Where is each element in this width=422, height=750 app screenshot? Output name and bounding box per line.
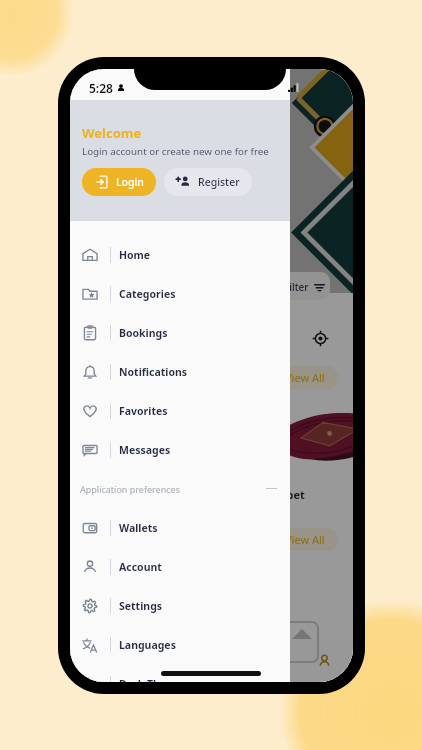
staticText: Dark Theme: [119, 677, 183, 682]
button[interactable]: Account: [70, 547, 290, 586]
staticText: Categories: [119, 287, 176, 301]
staticText: Languages: [119, 638, 176, 652]
staticText: Account: [119, 560, 162, 574]
staticText: Favorites: [119, 404, 168, 418]
button[interactable]: Wallets: [70, 508, 290, 547]
button[interactable]: Bookings: [70, 313, 290, 352]
staticText: Home: [119, 248, 151, 262]
button[interactable]: Settings: [70, 586, 290, 625]
staticText: Welcome: [82, 124, 142, 142]
button[interactable]: Notifications: [70, 352, 290, 391]
button[interactable]: Categories: [70, 274, 290, 313]
staticText: Messages: [119, 443, 171, 457]
staticText: Bookings: [119, 326, 168, 340]
staticText: 5:28: [89, 80, 113, 96]
button[interactable]: View All: [272, 528, 338, 551]
button[interactable]: View All: [272, 366, 338, 389]
staticText: Register: [198, 175, 240, 189]
button[interactable]: Dark Theme: [70, 664, 290, 682]
staticText: View All: [285, 370, 325, 385]
button[interactable]: Register: [164, 168, 252, 196]
staticText: Carpet: [268, 487, 305, 502]
staticText: Notifications: [119, 365, 188, 379]
staticText: View All: [285, 532, 325, 547]
staticText: Settings: [119, 599, 163, 613]
button[interactable]: Login: [82, 168, 156, 196]
staticText: Wallets: [119, 521, 158, 535]
staticText: Application preferences: [80, 483, 180, 495]
button[interactable]: Languages: [70, 625, 290, 664]
button[interactable]: Messages: [70, 430, 290, 469]
staticText: Login: [116, 175, 144, 189]
staticText: Login account or create new one for free: [82, 145, 269, 158]
button[interactable]: Favorites: [70, 391, 290, 430]
button[interactable]: Home: [70, 235, 290, 274]
staticText: Filter: [284, 280, 309, 294]
